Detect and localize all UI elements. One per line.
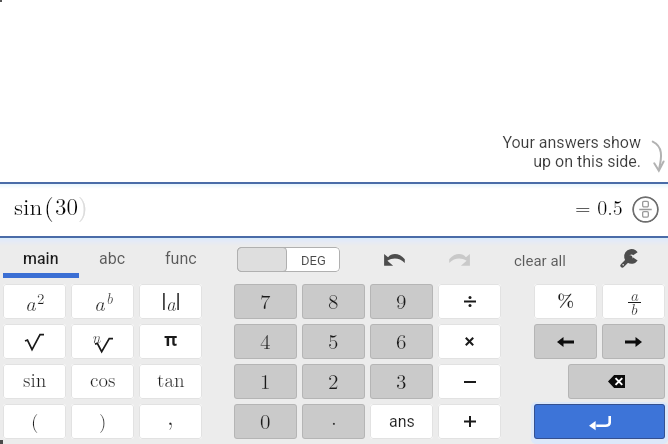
button[interactable]: 4 [234, 324, 297, 359]
staticText: main [23, 249, 59, 268]
button[interactable]: % [534, 284, 597, 319]
button[interactable]: abc [82, 240, 142, 278]
staticText: abc [99, 249, 126, 268]
button[interactable]: clear all [500, 245, 580, 273]
staticText: 2 [37, 287, 45, 308]
button[interactable]: 7 [234, 284, 297, 319]
button[interactable]: Settings [610, 245, 648, 273]
staticText: sin [14, 189, 43, 222]
staticText: tan [157, 366, 185, 393]
staticText: ) [99, 407, 107, 434]
button[interactable]: sin [14, 188, 86, 223]
button[interactable]: Redo [439, 245, 481, 273]
button[interactable]: 1 [234, 364, 297, 399]
staticText: 6 [396, 325, 407, 355]
staticText: a [630, 284, 639, 306]
staticText: func [165, 249, 197, 268]
staticText: sin [23, 366, 47, 393]
button[interactable]: 5 [302, 324, 365, 359]
button[interactable]: ( [3, 404, 66, 439]
button[interactable]: 6 [370, 324, 433, 359]
button[interactable]: a [3, 284, 66, 319]
staticText: n [92, 326, 101, 345]
button[interactable]: a [139, 284, 202, 319]
staticText: 30 [55, 189, 78, 222]
button[interactable]: 9 [370, 284, 433, 319]
button[interactable]: , [139, 404, 202, 439]
staticText: 5 [328, 325, 339, 355]
button[interactable]: Enter [534, 404, 665, 439]
staticText: DEG [301, 253, 326, 268]
button[interactable] [438, 364, 501, 399]
button[interactable]: n [71, 324, 134, 359]
button[interactable] [438, 324, 501, 359]
button[interactable]: 0 [234, 404, 297, 439]
button[interactable]: 3 [370, 364, 433, 399]
button[interactable]: a [602, 284, 665, 319]
button[interactable]: . [302, 404, 365, 439]
staticText: 3 [396, 365, 407, 395]
button[interactable]: func [148, 240, 214, 278]
staticText: b [630, 297, 638, 319]
button[interactable]: main [3, 240, 79, 278]
button[interactable]: Undo [373, 245, 415, 273]
staticText: 1 [260, 365, 271, 395]
button[interactable]: DEG [287, 247, 340, 272]
staticText: , [167, 404, 174, 432]
staticText: cos [90, 366, 116, 393]
staticText: clear all [514, 252, 566, 270]
staticText: ( [31, 407, 39, 434]
staticText: 9 [396, 285, 407, 315]
staticText: b [106, 287, 113, 308]
staticText: ) [78, 188, 88, 223]
button[interactable] [602, 324, 665, 359]
staticText: 2 [328, 365, 339, 395]
button[interactable]: cos [71, 364, 134, 399]
staticText: ans [389, 412, 415, 431]
button[interactable]: ans [370, 404, 433, 439]
staticText: 0 [260, 405, 271, 435]
staticText: % [557, 287, 575, 313]
button[interactable]: Toggle fraction display [632, 196, 659, 223]
button[interactable] [438, 404, 501, 439]
staticText: Your answers show up on this side. [502, 133, 641, 171]
button[interactable]: Backspace [568, 364, 665, 399]
button[interactable]: ) [71, 404, 134, 439]
staticText: 8 [328, 285, 339, 315]
staticText: 7 [260, 285, 271, 315]
staticText: = 0.5 [575, 192, 623, 220]
button[interactable]: π [139, 324, 202, 359]
button[interactable]: sin [3, 364, 66, 399]
button[interactable]: tan [139, 364, 202, 399]
button[interactable] [534, 324, 597, 359]
button[interactable]: Radians [237, 247, 287, 272]
staticText: . [331, 404, 337, 431]
staticText: a [25, 287, 36, 317]
staticText: π [164, 327, 178, 352]
button[interactable]: a [71, 284, 134, 319]
staticText: a [94, 287, 105, 317]
button[interactable]: 8 [302, 284, 365, 319]
staticText: a [166, 290, 176, 317]
button[interactable]: 2 [302, 364, 365, 399]
button[interactable] [438, 284, 501, 319]
staticText: ( [44, 188, 54, 223]
button[interactable] [3, 324, 66, 359]
staticText: 4 [260, 325, 271, 355]
